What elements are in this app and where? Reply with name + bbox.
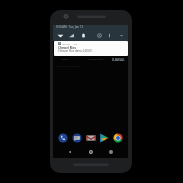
button[interactable]: Chrome: [113, 133, 123, 143]
button[interactable]: Battery: [80, 32, 87, 39]
button[interactable]: Account: [106, 32, 113, 39]
button[interactable]: Recent apps: [107, 148, 115, 156]
button[interactable]: Home: [87, 148, 95, 156]
staticText: myMail: [62, 42, 71, 45]
button[interactable]: CLEAR ALL: [112, 58, 125, 61]
staticText: Chewon Rios dams 2:00:00: [58, 49, 92, 53]
staticText: · 9h: [73, 42, 78, 45]
button[interactable]: Play Store: [99, 133, 109, 143]
button[interactable]: Mobile signal: [68, 32, 75, 39]
button[interactable]: Settings: [96, 32, 103, 39]
button[interactable]: Gmail: [86, 133, 96, 143]
button[interactable]: Wi-Fi: [57, 32, 64, 39]
button[interactable]: Messages: [72, 133, 82, 143]
button[interactable]: Phone: [58, 133, 68, 143]
button[interactable]: Collapse shade: [118, 32, 125, 39]
button[interactable]: Manage notifications: [57, 64, 81, 67]
button[interactable]: OPEN: [98, 57, 105, 60]
button[interactable]: Back: [66, 148, 74, 156]
staticText: Chewel Rios: [58, 46, 76, 50]
button[interactable]: myMail: [54, 41, 128, 56]
button[interactable]: Reply: [62, 57, 69, 60]
staticText: 9:30 AM · Tue, Jan 13: [56, 25, 83, 29]
button[interactable]: SNOOZE: [88, 57, 98, 60]
